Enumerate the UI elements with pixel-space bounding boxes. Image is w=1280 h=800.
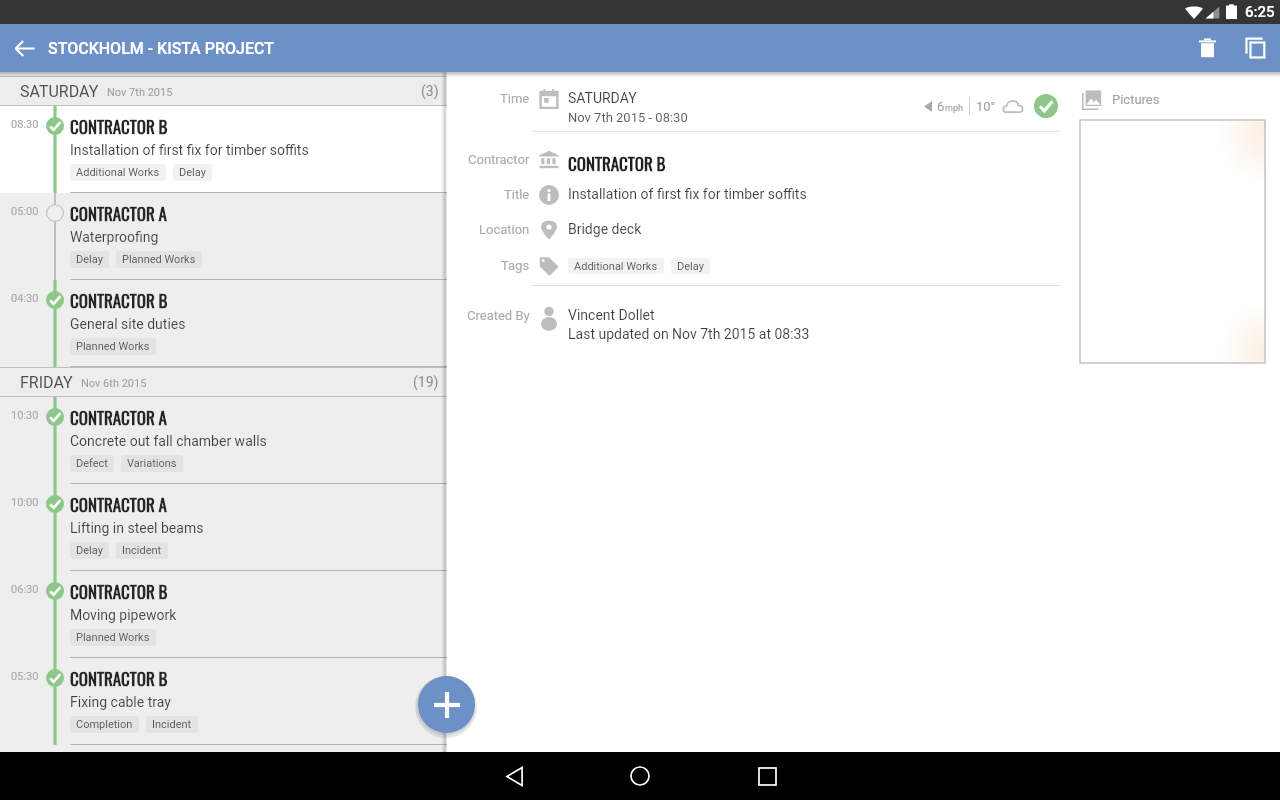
staticText: SATURDAY	[568, 90, 637, 106]
staticText: 10°	[976, 99, 996, 114]
staticText: Moving pipework	[70, 607, 177, 623]
staticText: Delay	[179, 166, 206, 179]
staticText: Delay	[677, 260, 704, 273]
staticText: Vincent Dollet	[568, 307, 655, 323]
staticText: Installation of first fix for timber sof…	[568, 186, 807, 202]
staticText: Nov 7th 2015	[107, 86, 173, 99]
staticText: CONTRACTOR B	[70, 114, 168, 139]
staticText: Delay	[76, 544, 103, 557]
staticText: 6	[937, 99, 945, 114]
staticText: Time	[500, 91, 530, 106]
button[interactable]: Recents	[743, 752, 791, 800]
staticText: 10:30	[11, 409, 39, 422]
staticText: mph	[945, 103, 963, 114]
button[interactable]: 05:00	[0, 193, 447, 280]
staticText: CONTRACTOR A	[70, 405, 167, 430]
staticText: FRIDAY	[20, 373, 73, 392]
staticText: CONTRACTOR A	[70, 492, 167, 517]
staticText: CONTRACTOR B	[70, 666, 168, 691]
staticText: Defect	[76, 457, 108, 470]
staticText: (3)	[421, 83, 439, 99]
staticText: Completion	[76, 718, 133, 731]
staticText: Contractor	[468, 152, 530, 167]
staticText: Waterproofing	[70, 229, 159, 245]
button[interactable]: Back	[490, 752, 538, 800]
staticText: Additional Works	[574, 260, 658, 273]
staticText: 05:00	[11, 205, 39, 218]
staticText: STOCKHOLM - KISTA PROJECT	[48, 39, 274, 58]
staticText: CONTRACTOR A	[70, 201, 167, 226]
button[interactable]: 10:30	[0, 397, 447, 484]
staticText: Planned Works	[76, 340, 150, 353]
staticText: Variations	[127, 457, 177, 470]
button[interactable]: 10:00	[0, 484, 447, 571]
staticText: Pictures	[1112, 92, 1160, 107]
staticText: Concrete out fall chamber walls	[70, 433, 267, 449]
button[interactable]: Home	[616, 752, 664, 800]
staticText: 6:25	[1245, 3, 1275, 21]
staticText: Location	[479, 222, 530, 237]
staticText: Lifting in steel beams	[70, 520, 204, 536]
staticText: 05:30	[11, 670, 39, 683]
staticText: Incident	[152, 718, 192, 731]
staticText: 04:30	[11, 292, 39, 305]
staticText: General site duties	[70, 316, 186, 332]
staticText: Incident	[122, 544, 162, 557]
staticText: Fixing cable tray	[70, 694, 171, 710]
staticText: Created By	[467, 308, 530, 323]
button[interactable]: 04:30	[0, 280, 447, 367]
staticText: Nov 6th 2015	[81, 377, 147, 390]
staticText: CONTRACTOR B	[568, 151, 666, 176]
button[interactable]: Delete	[1183, 24, 1231, 72]
staticText: CONTRACTOR B	[70, 579, 168, 604]
button[interactable]: 05:30	[0, 658, 447, 745]
staticText: Planned Works	[122, 253, 196, 266]
staticText: CONTRACTOR B	[70, 288, 168, 313]
button[interactable]: 06:30	[0, 571, 447, 658]
staticText: Delay	[76, 253, 103, 266]
staticText: Title	[504, 187, 530, 202]
staticText: (19)	[413, 374, 439, 390]
staticText: Additional Works	[76, 166, 160, 179]
button[interactable]: Copy	[1231, 24, 1279, 72]
staticText: Nov 7th 2015 - 08:30	[568, 110, 688, 125]
staticText: 06:30	[11, 583, 39, 596]
staticText: Tags	[501, 258, 530, 273]
button[interactable]: 08:30	[0, 106, 447, 193]
staticText: Planned Works	[76, 631, 150, 644]
button[interactable]: Back	[0, 24, 48, 72]
staticText: Installation of first fix for timber sof…	[70, 142, 309, 158]
staticText: Bridge deck	[568, 221, 642, 237]
button[interactable]: Add	[418, 676, 475, 733]
staticText: SATURDAY	[20, 82, 99, 101]
staticText: 08:30	[11, 118, 39, 131]
staticText: 10:00	[11, 496, 39, 509]
staticText: Last updated on Nov 7th 2015 at 08:33	[568, 326, 810, 342]
